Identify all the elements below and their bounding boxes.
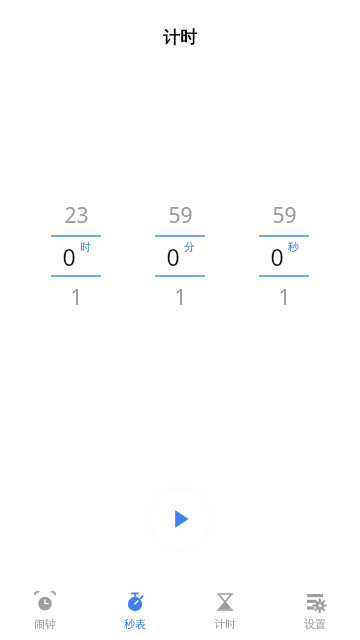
staticText: 0 (62, 241, 76, 272)
button[interactable]: 0 (141, 237, 219, 275)
staticText: 0 (270, 241, 284, 272)
staticText: 时 (80, 240, 91, 254)
staticText: 1 (278, 283, 291, 311)
staticText: 59 (168, 201, 193, 230)
button[interactable]: 闹钟 (0, 582, 90, 631)
button[interactable]: 0 (245, 237, 323, 275)
staticText: 设置 (304, 617, 326, 631)
staticText: 1 (174, 283, 187, 311)
staticText: 秒表 (124, 617, 146, 631)
button[interactable]: 秒表 (90, 582, 180, 631)
staticText: 59 (272, 201, 297, 230)
staticText: 计时 (0, 27, 360, 48)
staticText: 0 (166, 241, 180, 272)
staticText: 计时 (214, 617, 236, 631)
staticText: 1 (70, 283, 83, 311)
staticText: 23 (64, 201, 89, 230)
button[interactable]: Start (151, 490, 209, 548)
button[interactable]: 0 (37, 237, 115, 275)
staticText: 秒 (288, 240, 299, 254)
button[interactable]: 计时 (180, 582, 270, 631)
button[interactable]: 设置 (270, 582, 360, 631)
staticText: 闹钟 (34, 617, 56, 631)
staticText: 分 (184, 240, 195, 254)
